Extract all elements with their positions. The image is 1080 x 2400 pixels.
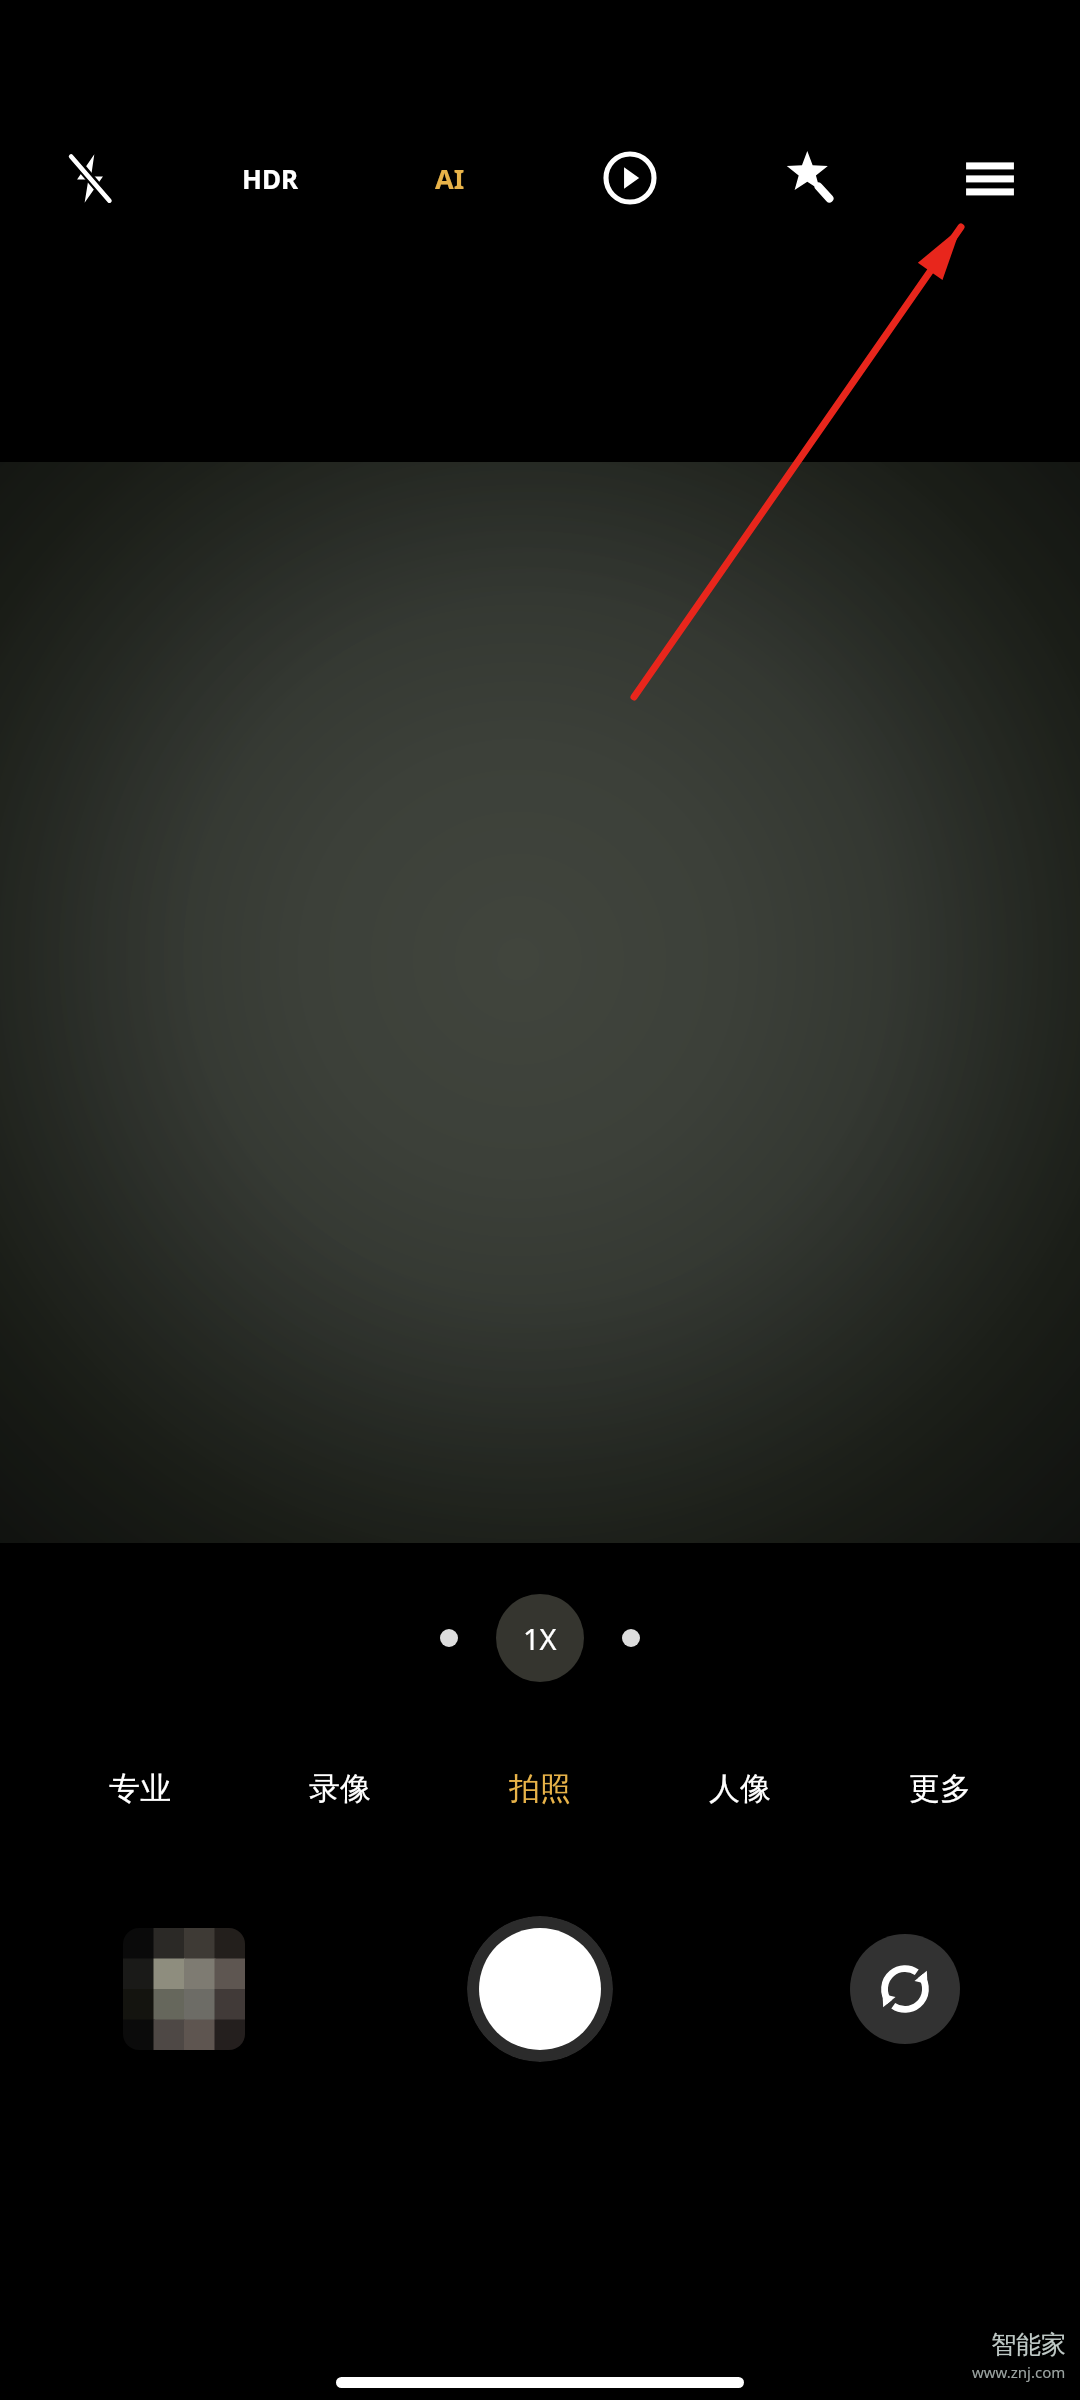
button[interactable]: 1X [496,1594,584,1682]
staticText: 拍照 [509,1769,571,1808]
staticText: 1X [523,1619,557,1658]
staticText: 智能家 [991,2329,1066,2360]
button[interactable]: HDR [180,140,360,216]
button[interactable]: Settings menu [900,140,1080,216]
button[interactable]: Telephoto 2x [622,1629,640,1647]
staticText: 人像 [709,1769,771,1808]
staticText: HDR [242,161,298,196]
staticText: 更多 [909,1769,971,1808]
button[interactable]: Motion photo [540,140,720,216]
button[interactable]: 录像 [240,1733,440,1843]
button[interactable]: Gallery [123,1928,245,2050]
button[interactable]: Switch camera [850,1934,960,2044]
staticText: 专业 [109,1769,171,1808]
staticText: www.znj.com [972,2362,1066,2382]
button[interactable]: 人像 [640,1733,840,1843]
button[interactable]: 专业 [40,1733,240,1843]
button[interactable]: Ultra wide 0.6x [440,1629,458,1647]
button[interactable]: 拍照 [440,1733,640,1843]
staticText: 录像 [309,1769,371,1808]
button[interactable]: Filters [720,140,900,216]
staticText: AI [435,160,465,197]
button[interactable]: Flash off [0,140,180,216]
button[interactable]: 更多 [840,1733,1040,1843]
button[interactable]: Shutter [467,1916,613,2062]
button[interactable]: AI [360,140,540,216]
